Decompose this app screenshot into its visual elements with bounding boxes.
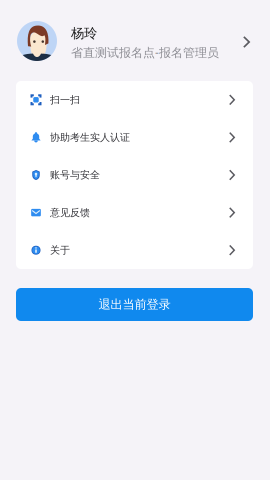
staticText: 扫一扫 [50,93,80,106]
button[interactable]: 意见反馈 [16,194,253,231]
button[interactable]: 退出当前登录 [16,288,253,321]
button[interactable]: 扫一扫 [16,81,253,119]
button[interactable]: 杨玲 [0,0,270,72]
staticText: 意见反馈 [50,206,90,219]
staticText: 退出当前登录 [98,297,170,312]
staticText: 省直测试报名点-报名管理员 [71,44,219,60]
staticText: 杨玲 [71,25,97,42]
staticText: 协助考生实人认证 [50,131,130,144]
staticText: 账号与安全 [50,169,100,181]
staticText: 关于 [50,244,70,256]
button[interactable]: 账号与安全 [16,156,253,194]
button[interactable]: 关于 [16,231,253,269]
button[interactable]: 协助考生实人认证 [16,119,253,156]
